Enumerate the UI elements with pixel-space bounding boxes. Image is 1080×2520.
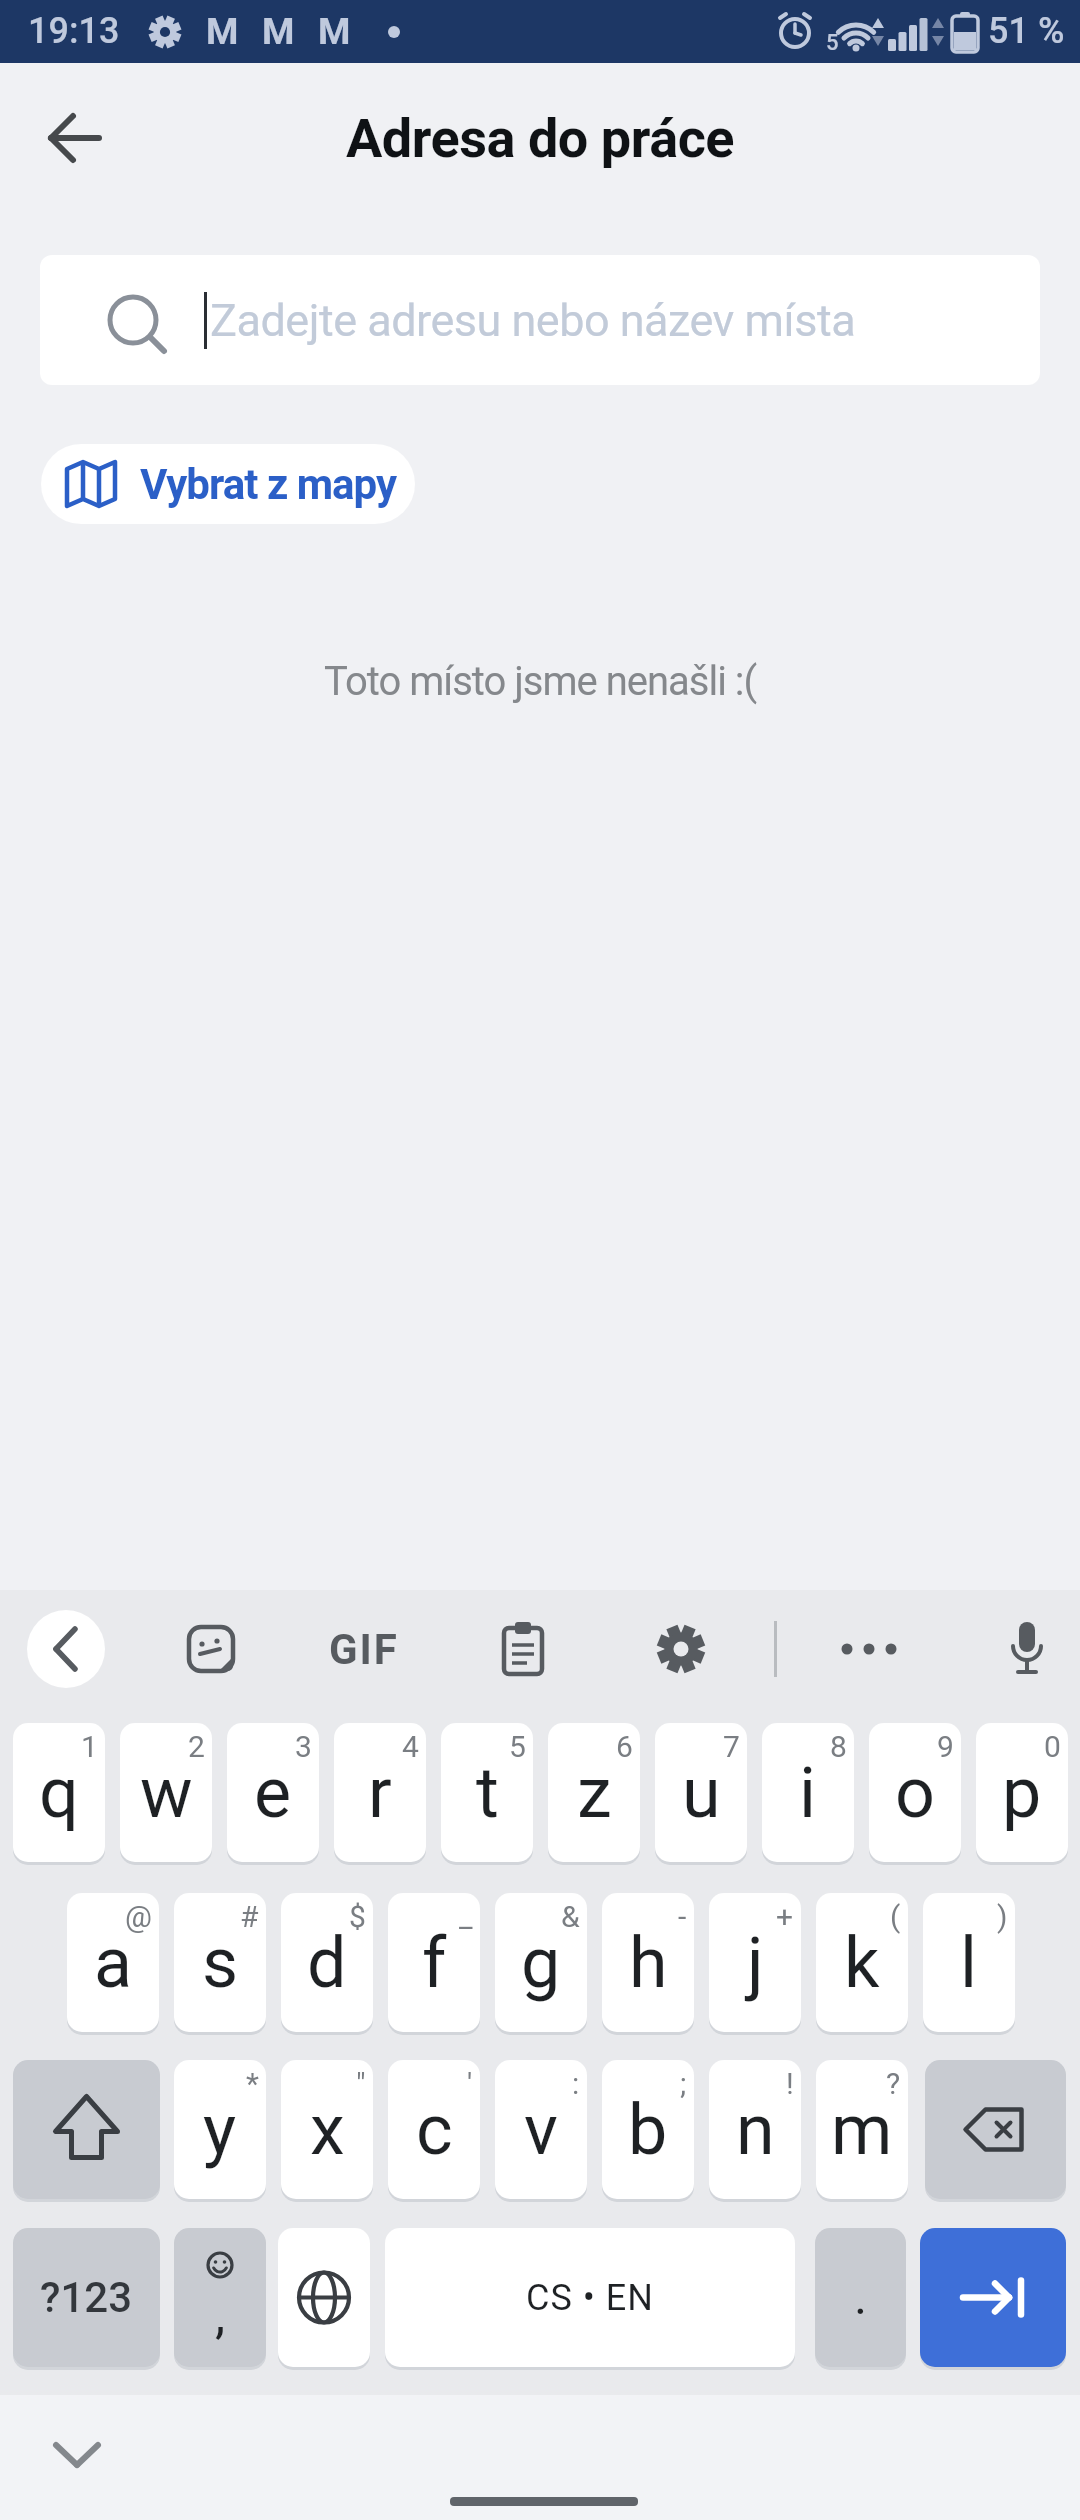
button[interactable]: w [120,1723,212,1862]
staticText: v [524,2089,558,2171]
staticText: d [307,1922,347,2004]
button[interactable] [13,2060,160,2199]
button[interactable]: n [709,2060,801,2199]
button[interactable] [838,1618,900,1680]
staticText: 9 [937,1729,954,1764]
staticText: g [521,1922,561,2004]
button[interactable]: j [709,1893,801,2032]
button[interactable]: l [923,1893,1015,2032]
button[interactable]: ?123 [13,2228,160,2367]
staticText: n [736,2089,775,2171]
button[interactable]: i [762,1723,854,1862]
button[interactable]: , [174,2228,266,2367]
staticText: Zadejte adresu nebo název místa [210,294,856,347]
button[interactable]: e [227,1723,319,1862]
button[interactable]: o [869,1723,961,1862]
staticText: 5 [826,30,839,56]
staticText: Adresa do práce [346,107,735,170]
button[interactable]: GIF [318,1618,410,1680]
staticText: , [215,2285,226,2346]
staticText: 0 [1044,1729,1061,1764]
staticText: # [240,1899,259,1934]
staticText: s [202,1922,239,2004]
staticText: M [318,10,351,53]
staticText: k [844,1922,880,2004]
staticText: " [356,2066,366,2101]
button[interactable]: . [815,2228,906,2367]
staticText: l [960,1922,978,2004]
staticText: @ [125,1899,152,1934]
button[interactable] [27,1610,105,1688]
staticText: 5 [509,1729,526,1764]
staticText: ; [680,2066,687,2101]
staticText: : [572,2066,580,2101]
button[interactable]: k [816,1893,908,2032]
staticText: - [678,1899,687,1934]
button[interactable]: f [388,1893,480,2032]
staticText: ? [886,2066,901,2101]
staticText: z [577,1752,612,1834]
staticText: _ [459,1899,473,1934]
staticText: Vybrat z mapy [140,460,397,509]
staticText: c [416,2089,453,2171]
button[interactable]: u [655,1723,747,1862]
staticText: y [203,2089,237,2171]
button[interactable]: v [495,2060,587,2199]
staticText: ' [467,2066,473,2101]
button[interactable]: q [13,1723,105,1862]
staticText: + [776,1899,794,1934]
staticText: & [561,1899,580,1934]
staticText: . [854,2268,868,2327]
button[interactable]: m [816,2060,908,2199]
button[interactable]: z [548,1723,640,1862]
staticText: f [422,1922,447,2004]
button[interactable]: d [281,1893,373,2032]
staticText: i [799,1752,817,1834]
button[interactable] [996,1618,1058,1680]
button[interactable]: CS • EN [385,2228,795,2367]
staticText: a [94,1922,133,2004]
staticText: 6 [616,1729,633,1764]
button[interactable] [278,2228,370,2367]
staticText: GIF [329,1625,399,1674]
button[interactable]: x [281,2060,373,2199]
staticText: e [254,1752,292,1834]
staticText: w [140,1752,193,1834]
button[interactable]: s [174,1893,266,2032]
staticText: ) [997,1899,1008,1934]
button[interactable]: Zadejte adresu nebo název místa [40,255,1040,385]
button[interactable]: r [334,1723,426,1862]
button[interactable]: t [441,1723,533,1862]
button[interactable] [30,2420,124,2490]
staticText: ! [786,2066,794,2101]
button[interactable] [920,2228,1066,2367]
button[interactable]: a [67,1893,159,2032]
staticText: b [628,2089,668,2171]
staticText: CS • EN [526,2277,654,2319]
button[interactable]: p [976,1723,1068,1862]
button[interactable]: y [174,2060,266,2199]
button[interactable] [925,2060,1066,2199]
button[interactable] [180,1618,242,1680]
staticText: j [747,1922,764,2004]
staticText: * [246,2066,259,2101]
staticText: ?123 [40,2273,133,2322]
button[interactable]: g [495,1893,587,2032]
staticText: p [1002,1752,1042,1834]
staticText: 2 [188,1729,205,1764]
staticText: x [310,2089,345,2171]
staticText: 51 % [988,10,1065,52]
button[interactable] [650,1618,712,1680]
button[interactable]: Vybrat z mapy [41,444,415,524]
button[interactable] [30,95,120,181]
button[interactable]: h [602,1893,694,2032]
button[interactable]: b [602,2060,694,2199]
staticText: 3 [295,1729,312,1764]
button[interactable]: c [388,2060,480,2199]
staticText: m [831,2089,893,2171]
staticText: u [682,1752,721,1834]
staticText: r [368,1752,392,1834]
button[interactable] [492,1618,554,1680]
staticText: 8 [830,1729,847,1764]
staticText: 19:13 [28,10,120,52]
